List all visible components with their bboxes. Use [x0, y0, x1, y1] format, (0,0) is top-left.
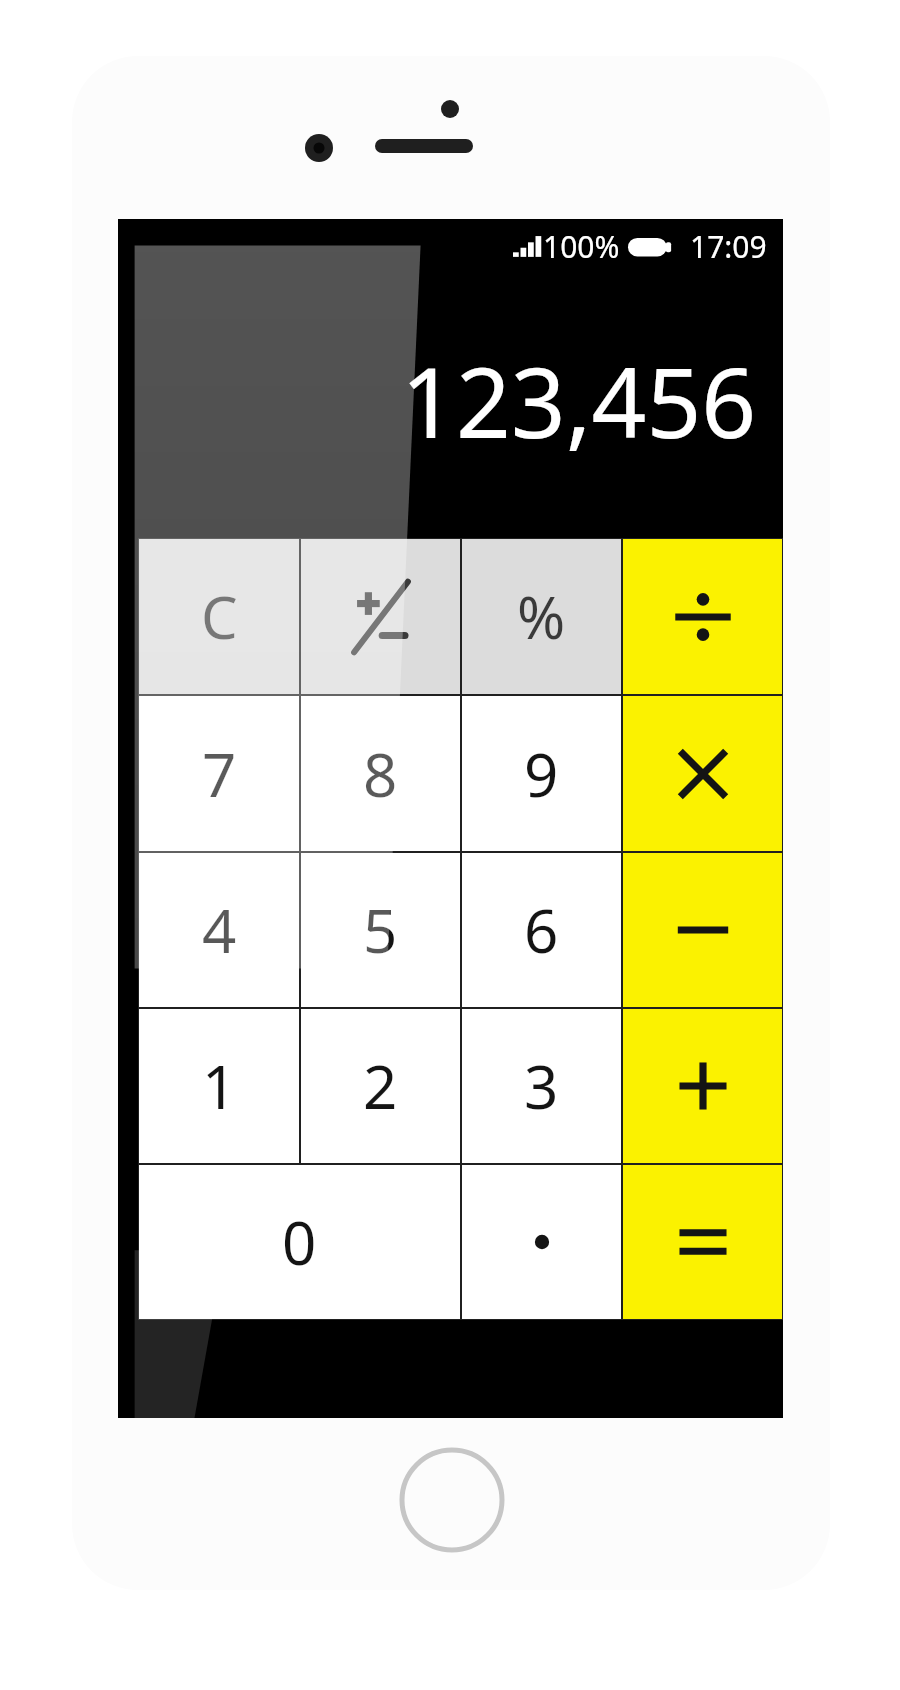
staticText: 5: [363, 889, 398, 971]
button[interactable]: 4: [139, 853, 299, 1007]
button[interactable]: 9: [462, 696, 621, 851]
staticText: 0: [282, 1201, 317, 1283]
button[interactable]: Minus: [623, 853, 782, 1007]
button[interactable]: 0: [139, 1165, 460, 1319]
button[interactable]: 7: [139, 696, 299, 851]
button[interactable]: 3: [462, 1009, 621, 1163]
staticText: 7: [202, 733, 237, 815]
staticText: 2: [363, 1045, 398, 1127]
staticText: 3: [524, 1045, 559, 1127]
button[interactable]: 1: [139, 1009, 299, 1163]
button[interactable]: %: [462, 539, 621, 694]
button[interactable]: Multiply: [623, 696, 782, 851]
button[interactable]: Decimal point: [462, 1165, 621, 1319]
staticText: 9: [524, 733, 559, 815]
staticText: 8: [363, 733, 398, 815]
staticText: 1: [202, 1045, 237, 1127]
button[interactable]: Divide: [623, 539, 782, 694]
button[interactable]: C: [139, 539, 299, 694]
staticText: 17:09: [690, 226, 767, 267]
button[interactable]: 8: [301, 696, 460, 851]
staticText: 100%: [543, 226, 620, 267]
button[interactable]: Equals: [623, 1165, 782, 1319]
staticText: C: [201, 577, 238, 656]
staticText: 4: [202, 889, 237, 971]
button[interactable]: Plus: [623, 1009, 782, 1163]
staticText: 123,456: [401, 335, 757, 466]
button[interactable]: 5: [301, 853, 460, 1007]
button[interactable]: 2: [301, 1009, 460, 1163]
staticText: %: [517, 577, 566, 656]
button[interactable]: Plus minus: [301, 539, 460, 694]
button[interactable]: 6: [462, 853, 621, 1007]
staticText: 6: [524, 889, 559, 971]
